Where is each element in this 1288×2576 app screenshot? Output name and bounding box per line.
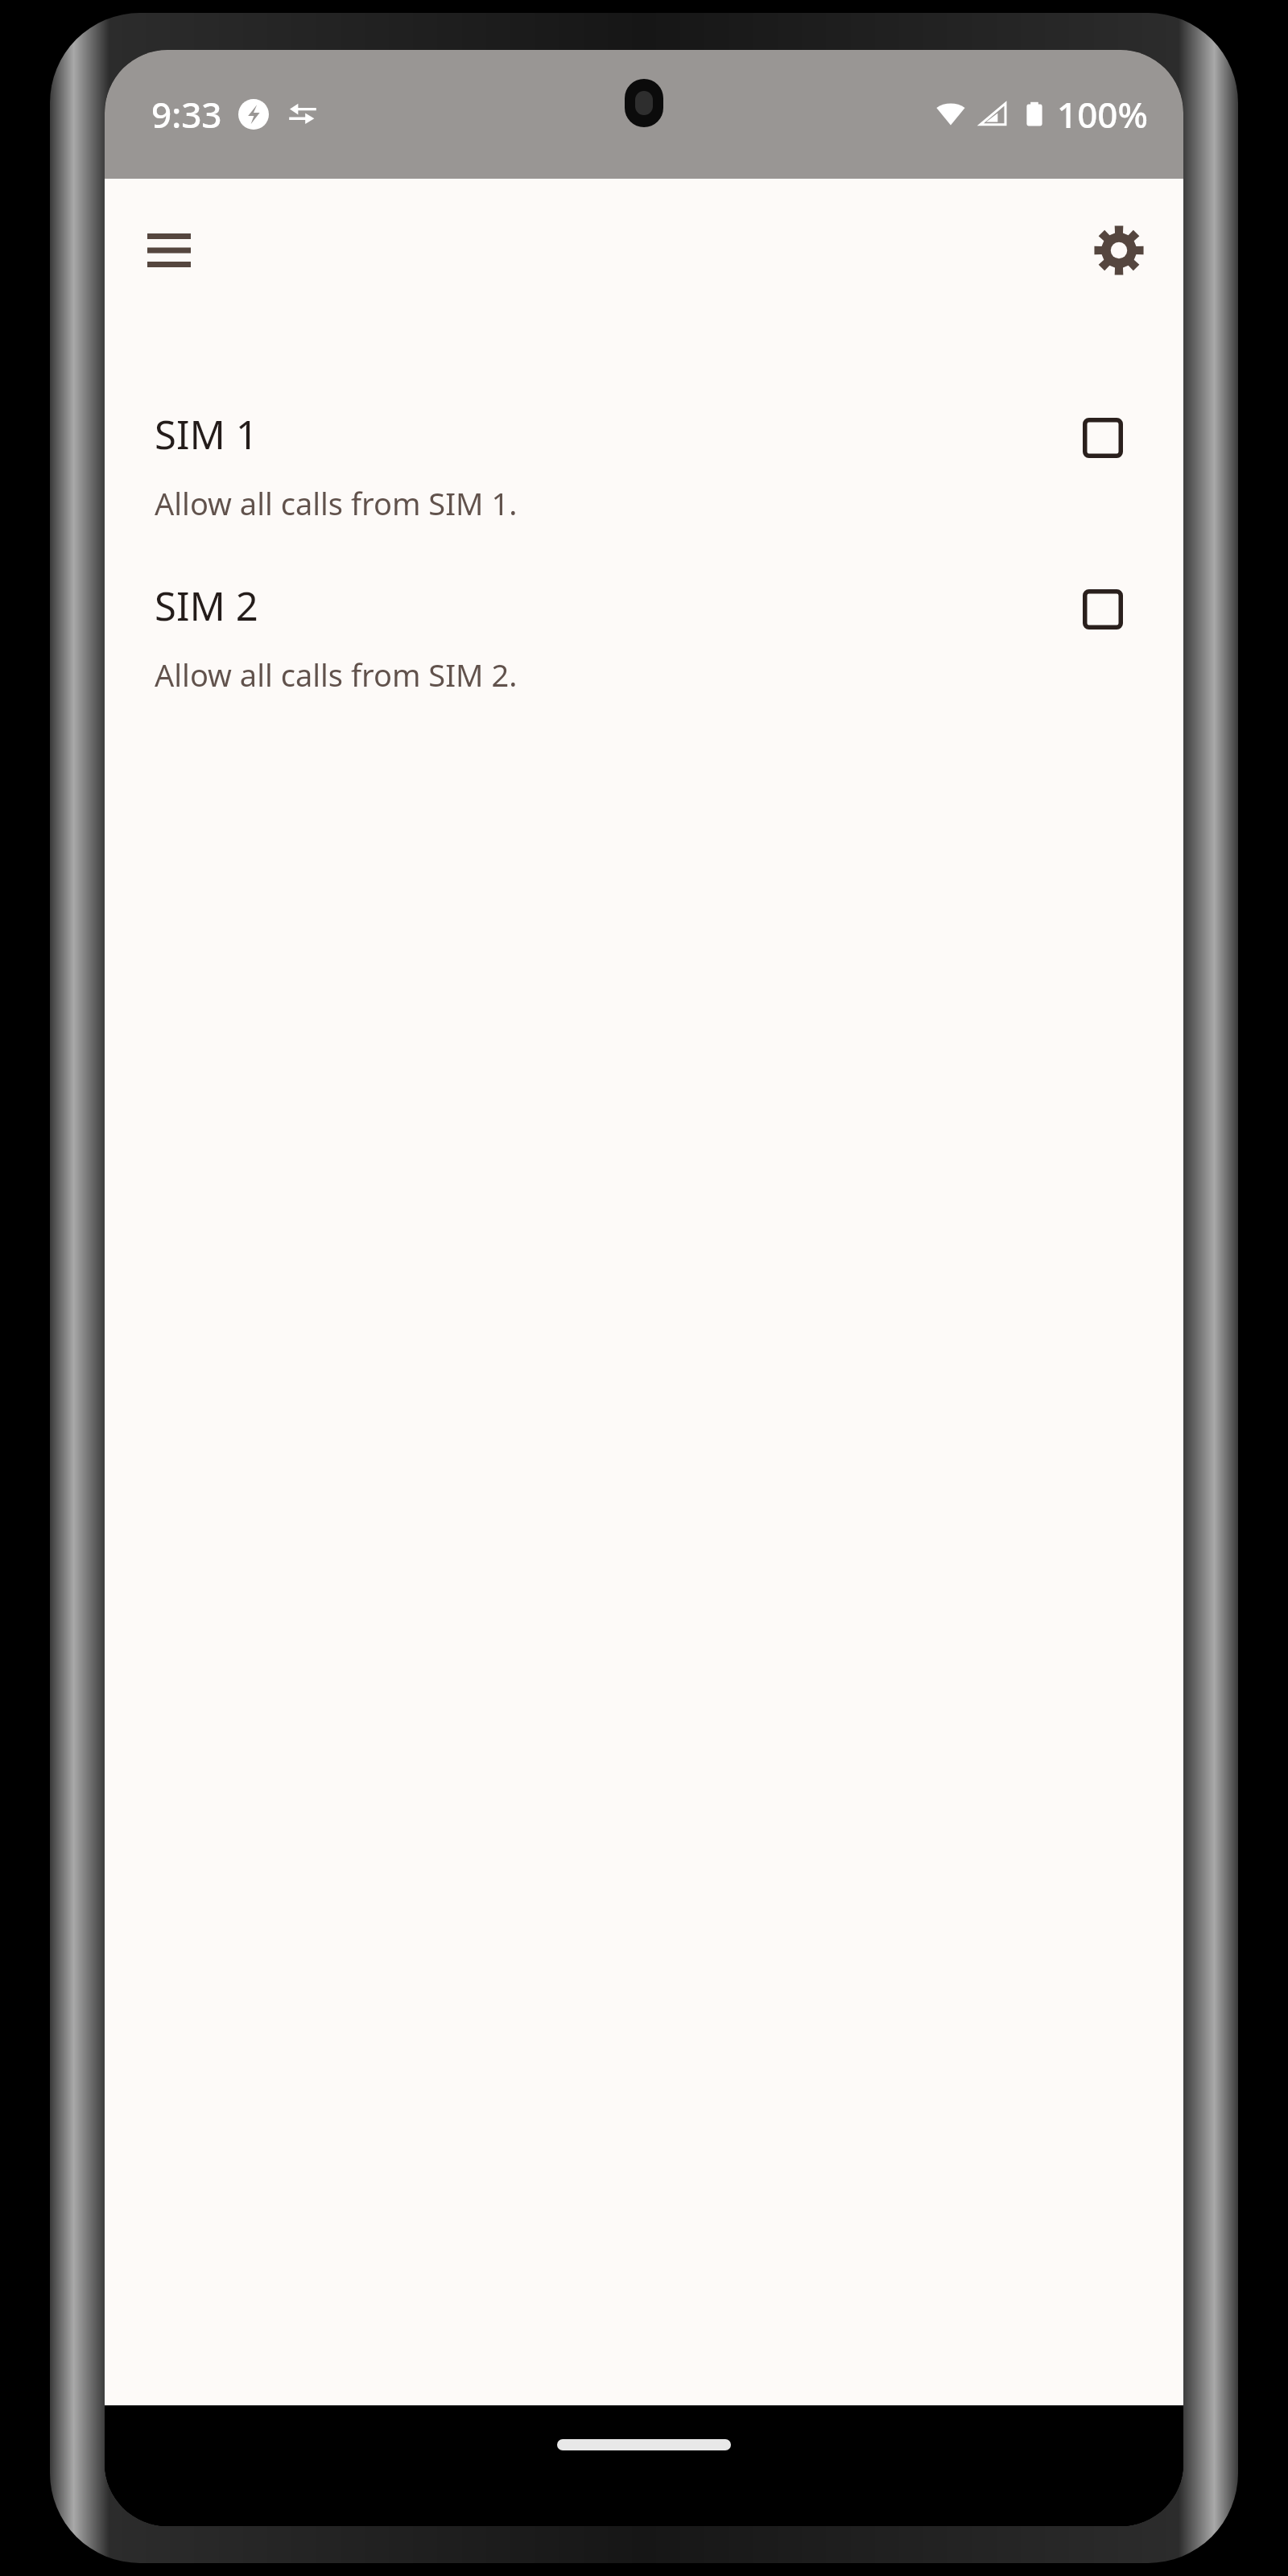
- staticText: 9:33: [151, 90, 222, 138]
- button[interactable]: SIM 1: [105, 393, 1183, 539]
- button[interactable]: SIM 1 checkbox: [1072, 407, 1133, 469]
- button[interactable]: SIM 2: [105, 564, 1183, 710]
- staticText: SIM 2: [155, 579, 258, 633]
- staticText: Allow all calls from SIM 2.: [155, 654, 518, 696]
- staticText: Allow all calls from SIM 1.: [155, 482, 518, 524]
- button[interactable]: Settings: [1074, 205, 1164, 295]
- staticText: 100%: [1057, 90, 1148, 138]
- button[interactable]: SIM 2 checkbox: [1072, 579, 1133, 640]
- staticText: SIM 1: [155, 407, 258, 461]
- button[interactable]: Home gesture bar: [557, 2439, 731, 2450]
- button[interactable]: Open navigation menu: [124, 205, 214, 295]
